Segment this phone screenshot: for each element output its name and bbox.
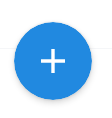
button[interactable]: Add <box>14 22 92 100</box>
